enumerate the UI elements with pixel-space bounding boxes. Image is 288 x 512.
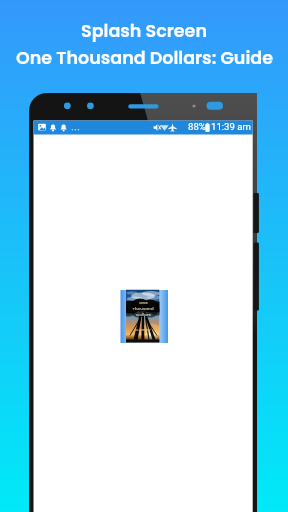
- staticText: Thousand: [132, 306, 154, 312]
- staticText: 11:39 am: [211, 121, 251, 132]
- staticText: Splash Screen: [81, 19, 207, 44]
- staticText: One: [139, 300, 148, 306]
- staticText: O. Henry: [126, 327, 160, 332]
- staticText: 88%: [188, 121, 206, 132]
- staticText: One Thousand Dollars: Guide: [16, 46, 273, 71]
- staticText: Dollars: [136, 312, 151, 318]
